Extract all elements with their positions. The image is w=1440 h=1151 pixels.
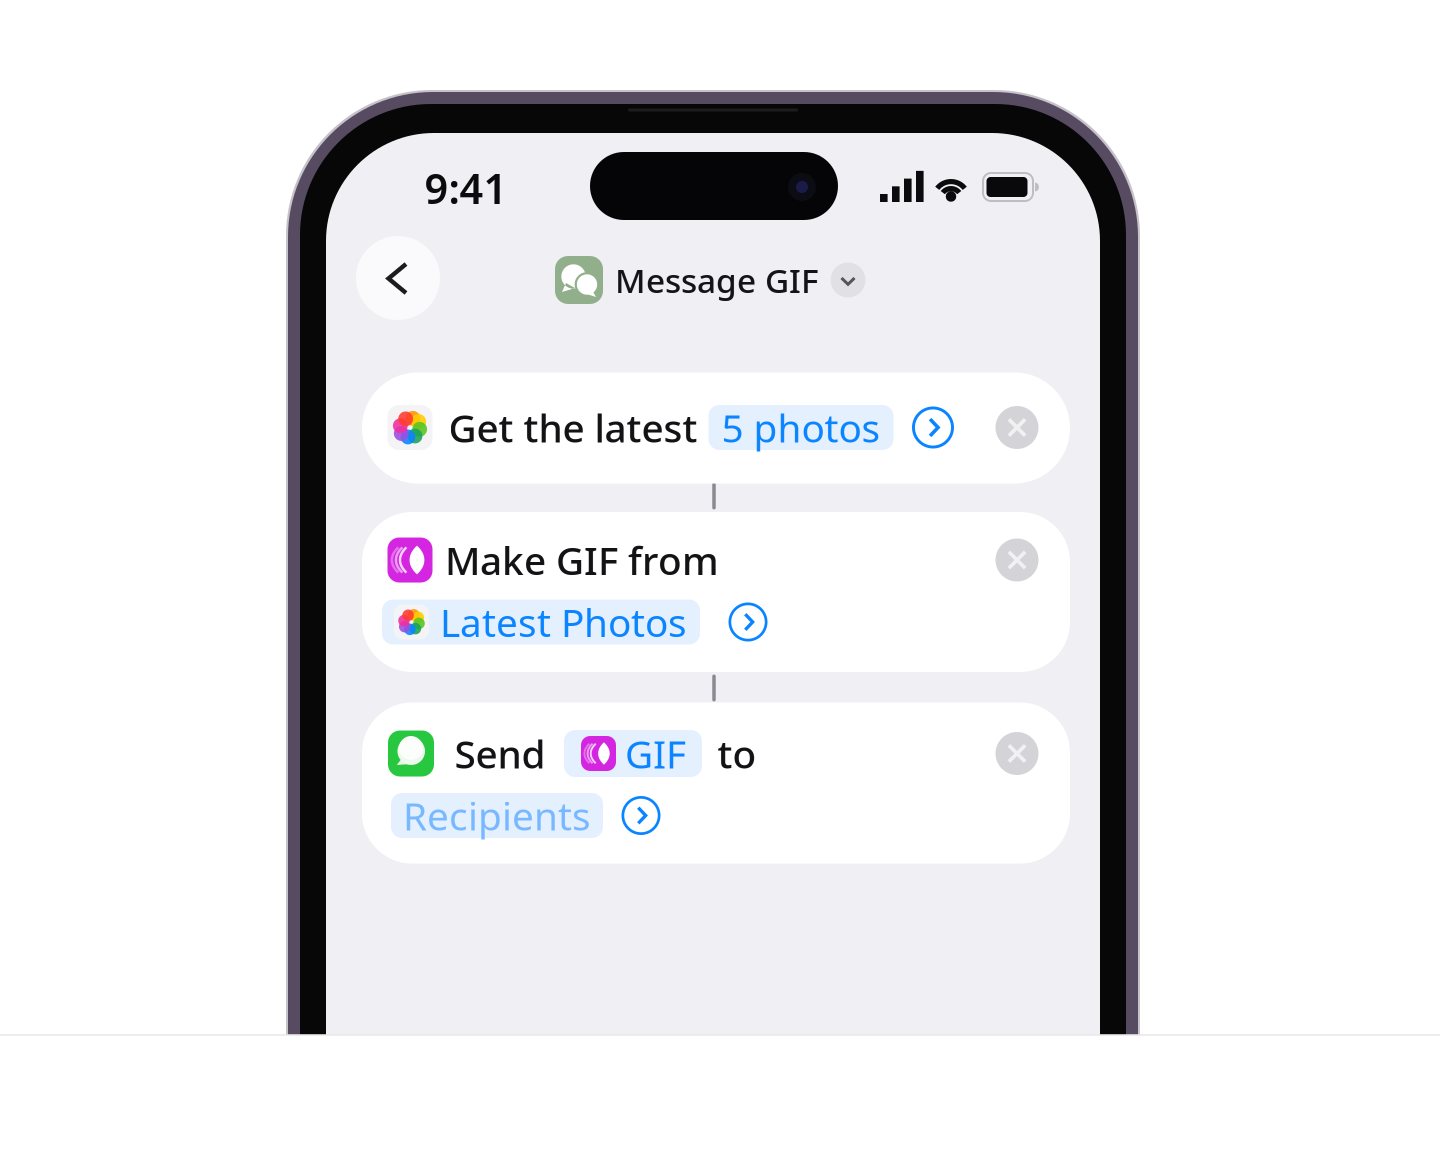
button[interactable]: Show details: [728, 602, 767, 641]
button[interactable]: Remove action: [995, 538, 1038, 581]
staticText: Send: [454, 728, 545, 779]
staticText: 9:41: [424, 161, 507, 215]
staticText: Latest Photos: [440, 596, 687, 648]
staticText: Get the latest: [448, 402, 697, 453]
staticText: GIF: [625, 728, 686, 779]
button[interactable]: Send: [362, 702, 1070, 863]
button[interactable]: Message GIF: [540, 245, 870, 315]
button[interactable]: Get the latest: [362, 372, 1070, 483]
button[interactable]: Show details: [621, 796, 660, 835]
staticText: 5 photos: [721, 402, 880, 453]
staticText: Message GIF: [615, 258, 819, 302]
staticText: Recipients: [403, 790, 591, 841]
button[interactable]: Remove action: [995, 406, 1038, 449]
staticText: Make GIF from: [445, 534, 719, 586]
button[interactable]: Remove action: [995, 732, 1038, 775]
button[interactable]: Make GIF from: [362, 512, 1070, 672]
button[interactable]: Back: [356, 236, 440, 320]
staticText: to: [717, 728, 756, 779]
button[interactable]: Show details: [912, 406, 954, 448]
